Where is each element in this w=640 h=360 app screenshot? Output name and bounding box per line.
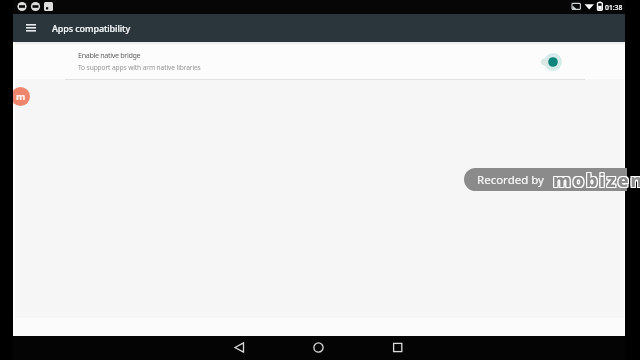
staticText: mobizen [553,168,640,191]
staticText: Enable native bridge [78,50,141,60]
staticText: mobizen [552,167,640,190]
button[interactable] [17,14,45,42]
button[interactable]: m [13,87,30,106]
button[interactable] [295,336,343,360]
staticText: Recorded by [477,172,544,188]
button[interactable]: Enable native bridge [13,42,625,79]
button[interactable] [374,336,422,360]
button[interactable] [216,336,264,360]
staticText: mobizen [554,167,640,190]
staticText: mobizen [554,169,640,192]
staticText: 01:38 [605,3,623,12]
staticText: To support apps with arm native librarie… [78,63,201,72]
staticText: mobizen [552,169,640,192]
staticText: Apps compatibility [52,22,131,34]
staticText: m [16,90,26,103]
